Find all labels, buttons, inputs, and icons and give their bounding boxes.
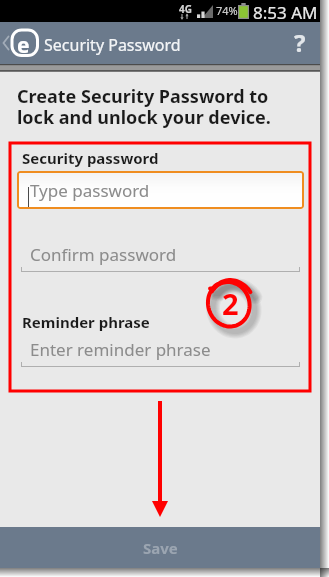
staticText: Enter reminder phrase <box>30 338 211 361</box>
button[interactable]: Type password <box>17 171 304 209</box>
button[interactable]: Help <box>276 22 320 64</box>
staticText: e <box>17 31 30 60</box>
button[interactable]: Save <box>0 527 320 568</box>
staticText: Type password <box>30 179 150 202</box>
staticText: Confirm password <box>30 243 177 266</box>
staticText: 74% <box>216 3 238 18</box>
staticText: Create Security Password to lock and unl… <box>17 84 271 130</box>
staticText: ? <box>294 26 306 59</box>
staticText: Reminder phrase <box>22 312 150 332</box>
staticText: 8:53 AM <box>253 1 318 23</box>
button[interactable]: Back <box>0 22 40 64</box>
staticText: Security Password <box>44 34 181 56</box>
staticText: Security password <box>22 148 159 168</box>
staticText: 2 <box>222 284 239 323</box>
staticText: Save <box>143 538 178 558</box>
staticText: 4G <box>179 2 192 16</box>
